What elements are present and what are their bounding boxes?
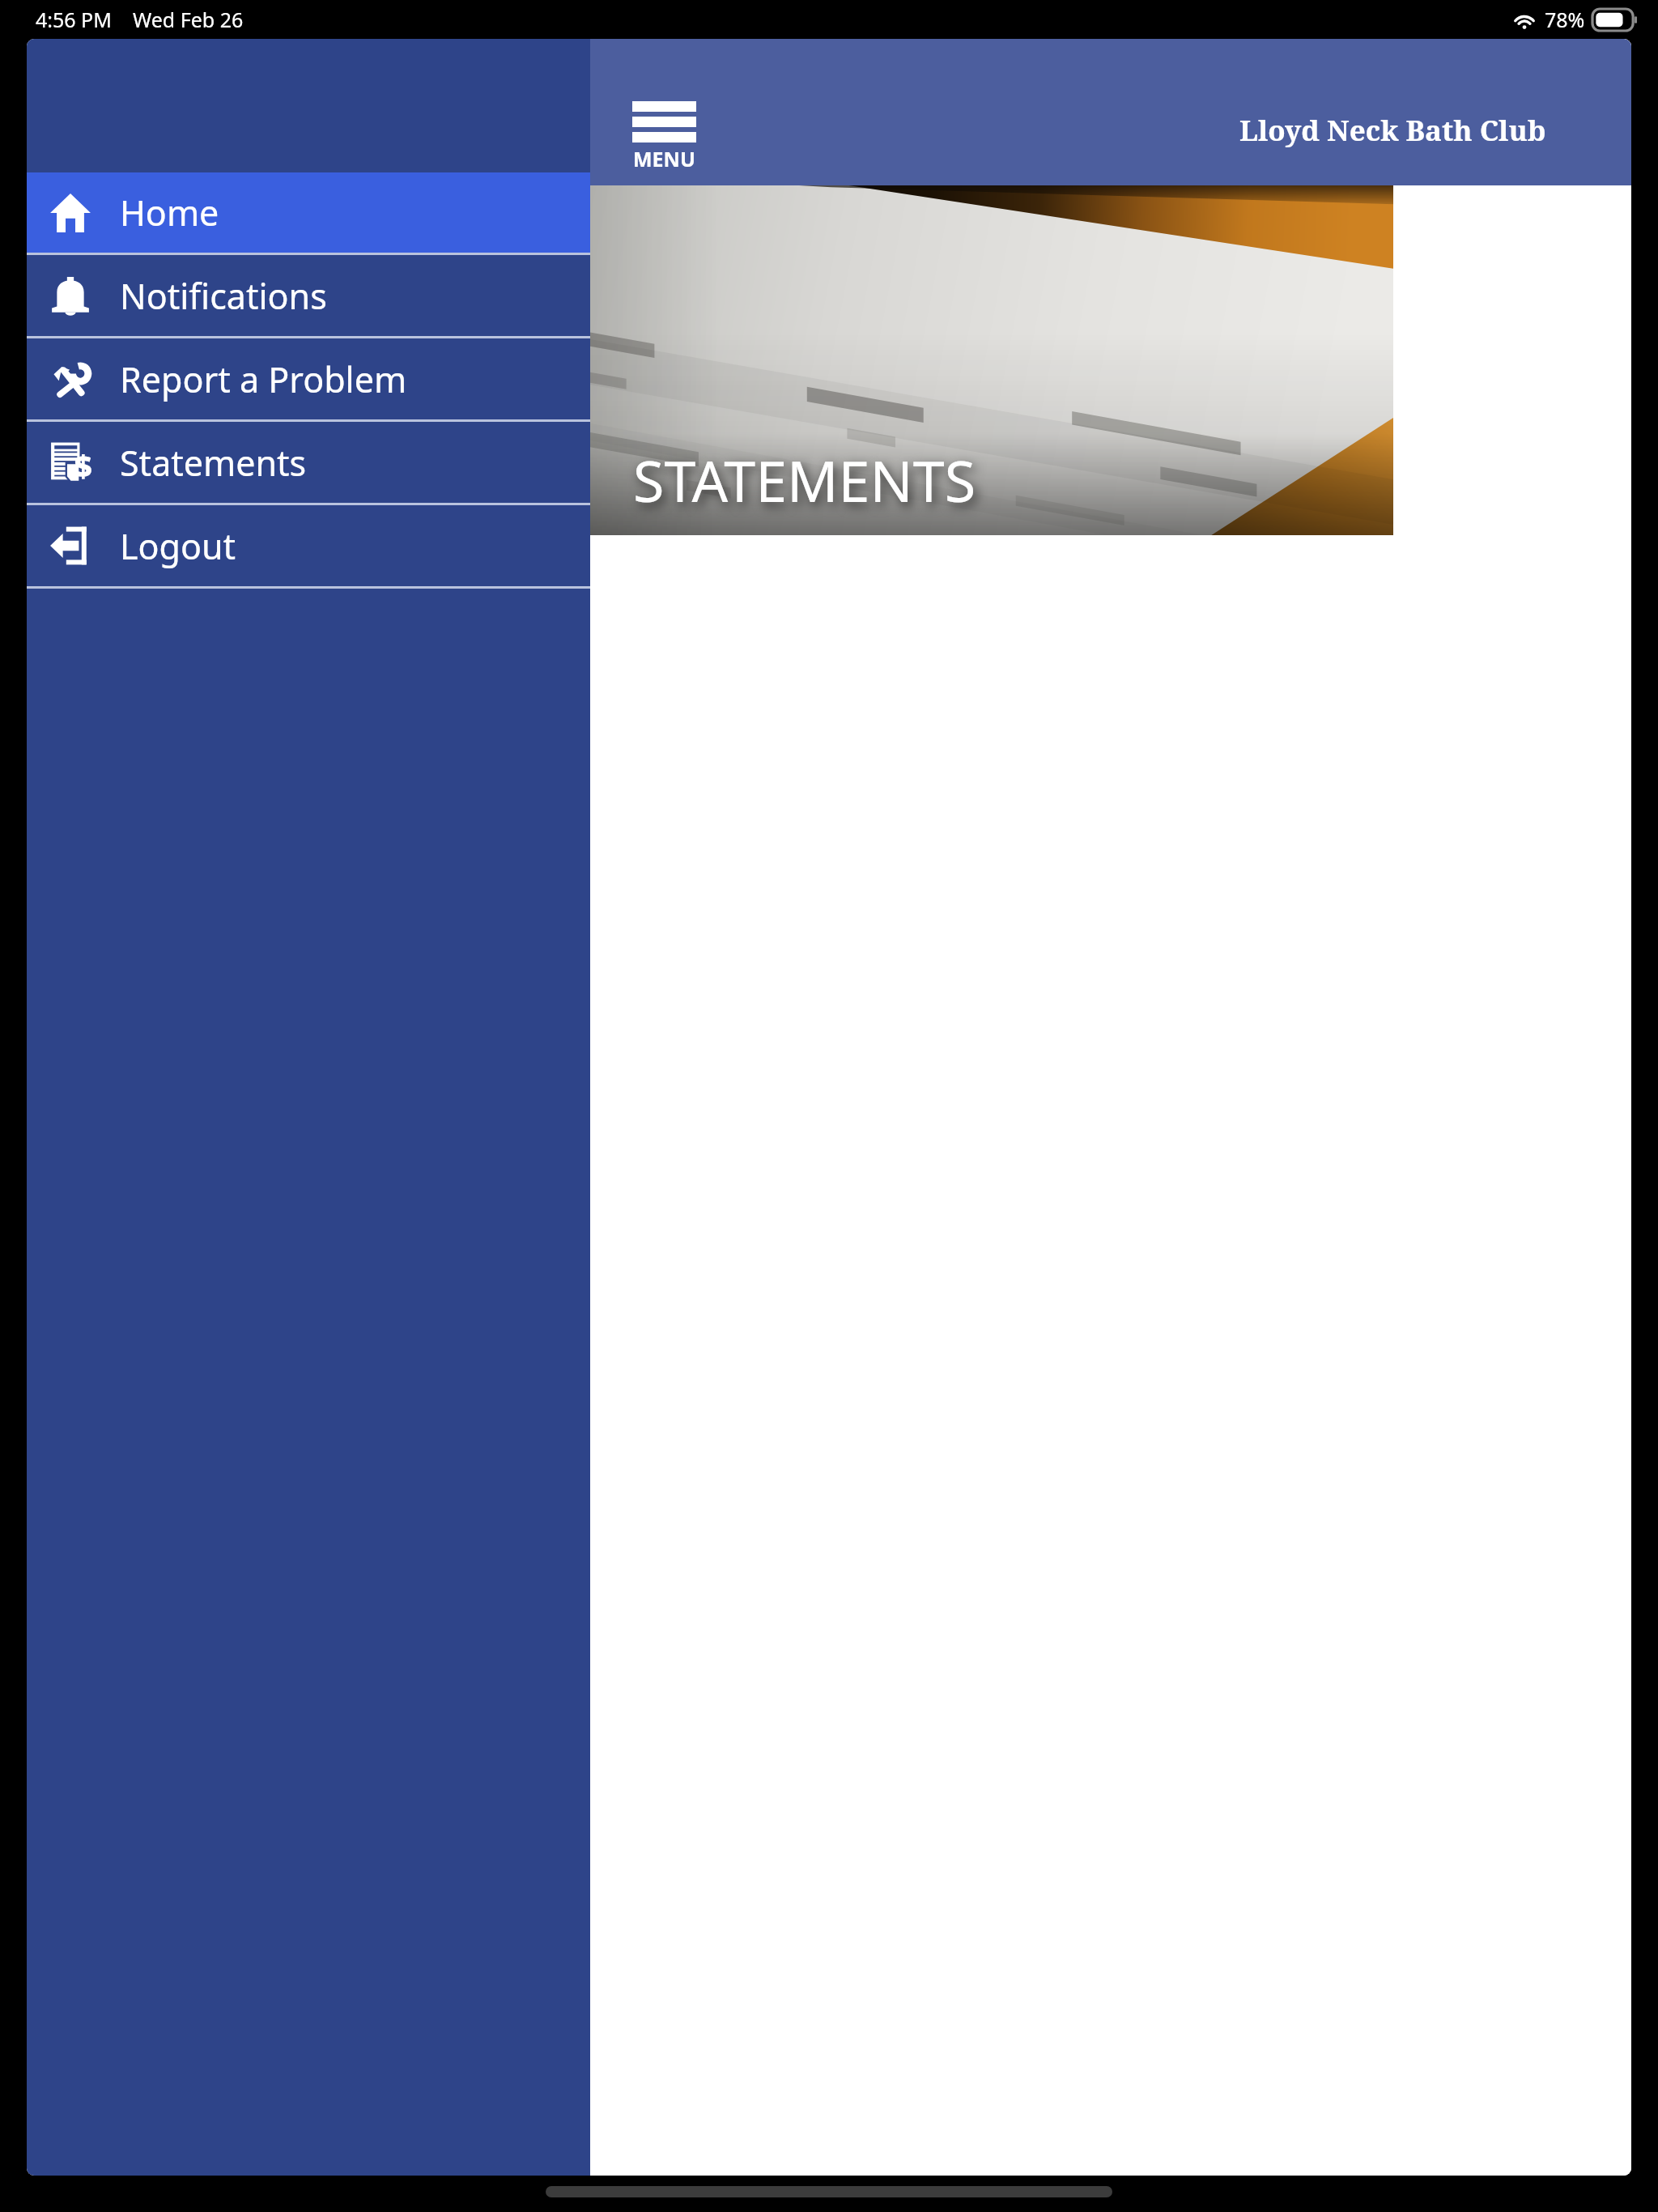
button[interactable]: Notifications xyxy=(27,255,590,336)
button[interactable]: Menu xyxy=(624,93,704,181)
staticText: 78% xyxy=(1545,6,1585,33)
staticText: $ xyxy=(74,445,92,486)
staticText: Report a Problem xyxy=(120,355,407,403)
button[interactable]: $ xyxy=(27,422,590,503)
staticText: 4:56 PM xyxy=(36,6,112,33)
staticText: Home xyxy=(120,189,219,236)
button[interactable]: Report a Problem xyxy=(27,338,590,419)
button[interactable]: STATEMENTS xyxy=(590,185,1393,535)
button[interactable]: Home xyxy=(27,172,590,253)
staticText: MENU xyxy=(633,145,695,172)
staticText: Wed Feb 26 xyxy=(133,6,244,33)
staticText: Statements xyxy=(120,439,307,487)
staticText: Logout xyxy=(120,522,236,570)
button[interactable]: Logout xyxy=(27,505,590,586)
staticText: Lloyd Neck Bath Club xyxy=(1239,111,1546,150)
staticText: STATEMENTS xyxy=(633,441,976,518)
staticText: Notifications xyxy=(120,272,327,320)
